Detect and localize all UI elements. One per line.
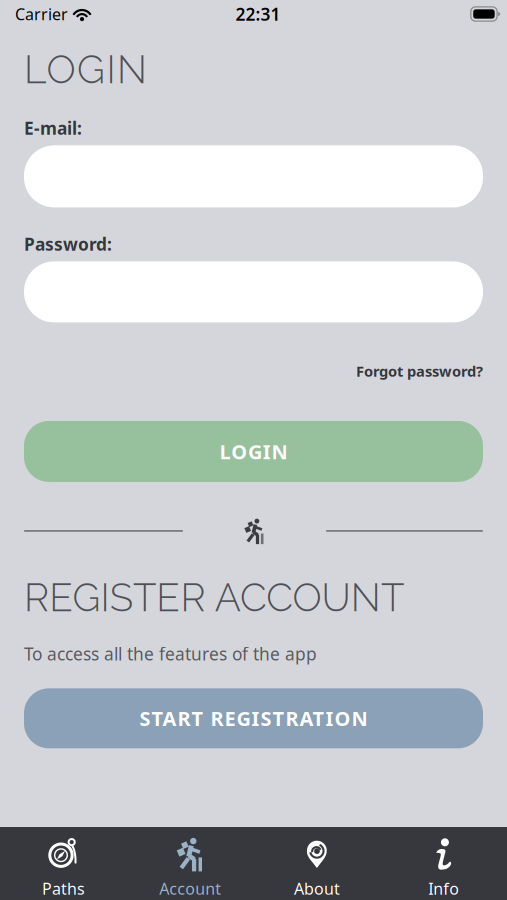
staticText: Account: [159, 878, 221, 899]
staticText: Carrier: [15, 3, 68, 25]
staticText: Password:: [24, 232, 112, 255]
staticText: REGISTER ACCOUNT: [24, 575, 404, 620]
staticText: To access all the features of the app: [24, 642, 317, 665]
staticText: E-mail:: [24, 116, 82, 139]
staticText: LOGIN: [219, 438, 288, 465]
button[interactable]: Account: [127, 827, 254, 900]
button[interactable]: START REGISTRATION: [24, 688, 483, 748]
staticText: Forgot password?: [356, 361, 483, 381]
button[interactable]: Paths: [0, 827, 127, 900]
staticText: 22:31: [235, 2, 280, 25]
staticText: Info: [428, 878, 459, 899]
staticText: About: [294, 878, 340, 899]
button[interactable]: Forgot password?: [24, 322, 483, 387]
button[interactable]: Info: [380, 827, 507, 900]
staticText: START REGISTRATION: [139, 705, 367, 732]
staticText: Paths: [42, 878, 85, 899]
button[interactable]: LOGIN: [24, 421, 483, 482]
staticText: LOGIN: [24, 47, 147, 92]
button[interactable]: About: [253, 827, 380, 900]
